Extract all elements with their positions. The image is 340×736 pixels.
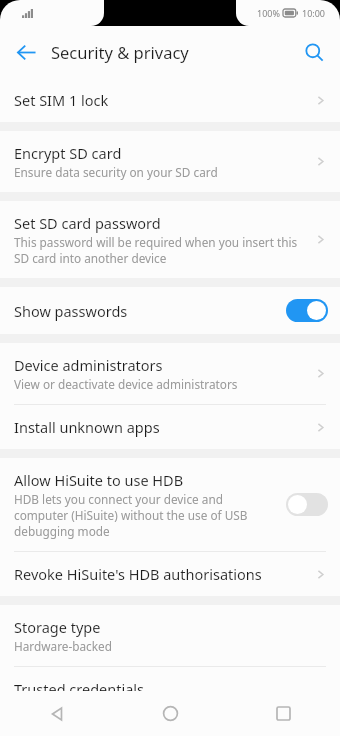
button[interactable]: Storage type — [0, 605, 340, 666]
button[interactable]: Set SD card password — [0, 201, 340, 278]
staticText: HDB lets you connect your device and com… — [14, 491, 276, 539]
staticText: 10:00 — [302, 7, 326, 19]
staticText: Show passwords — [14, 301, 128, 321]
button[interactable]: Trusted credentials — [0, 667, 340, 728]
button[interactable]: On — [286, 299, 328, 322]
staticText: Device administrators — [14, 355, 163, 375]
button[interactable]: Allow HiSuite to use HDB — [0, 458, 340, 551]
button[interactable]: Recents — [227, 691, 340, 736]
staticText: Encrypt SD card — [14, 143, 122, 163]
staticText: This password will be required when you … — [14, 234, 303, 266]
staticText: Set SIM 1 lock — [14, 90, 109, 110]
staticText: Trusted credentials — [14, 679, 145, 699]
button[interactable]: Back — [0, 691, 114, 736]
button[interactable]: Home — [114, 691, 227, 736]
staticText: Allow HiSuite to use HDB — [14, 470, 184, 490]
button[interactable]: Off — [286, 493, 328, 516]
staticText: Storage type — [14, 617, 101, 637]
button[interactable]: Device administrators — [0, 343, 340, 404]
staticText: Install unknown apps — [14, 417, 160, 437]
button[interactable]: Show passwords — [0, 287, 340, 334]
button[interactable]: Set SIM 1 lock — [0, 78, 340, 122]
staticText: Hardware-backed — [14, 638, 112, 654]
button[interactable]: Back — [6, 32, 46, 72]
staticText: Set SD card password — [14, 213, 161, 233]
button[interactable]: Encrypt SD card — [0, 131, 340, 192]
staticText: Ensure data security on your SD card — [14, 164, 218, 180]
staticText: 100% — [257, 7, 280, 19]
button[interactable]: Revoke HiSuite's HDB authorisations — [0, 552, 340, 596]
staticText: Revoke HiSuite's HDB authorisations — [14, 564, 262, 584]
staticText: Security & privacy — [51, 41, 189, 63]
staticText: View or deactivate device administrators — [14, 376, 238, 392]
button[interactable]: Install unknown apps — [0, 405, 340, 449]
staticText: Display trusted CA certificates — [14, 700, 180, 716]
button[interactable]: Search — [294, 32, 334, 72]
